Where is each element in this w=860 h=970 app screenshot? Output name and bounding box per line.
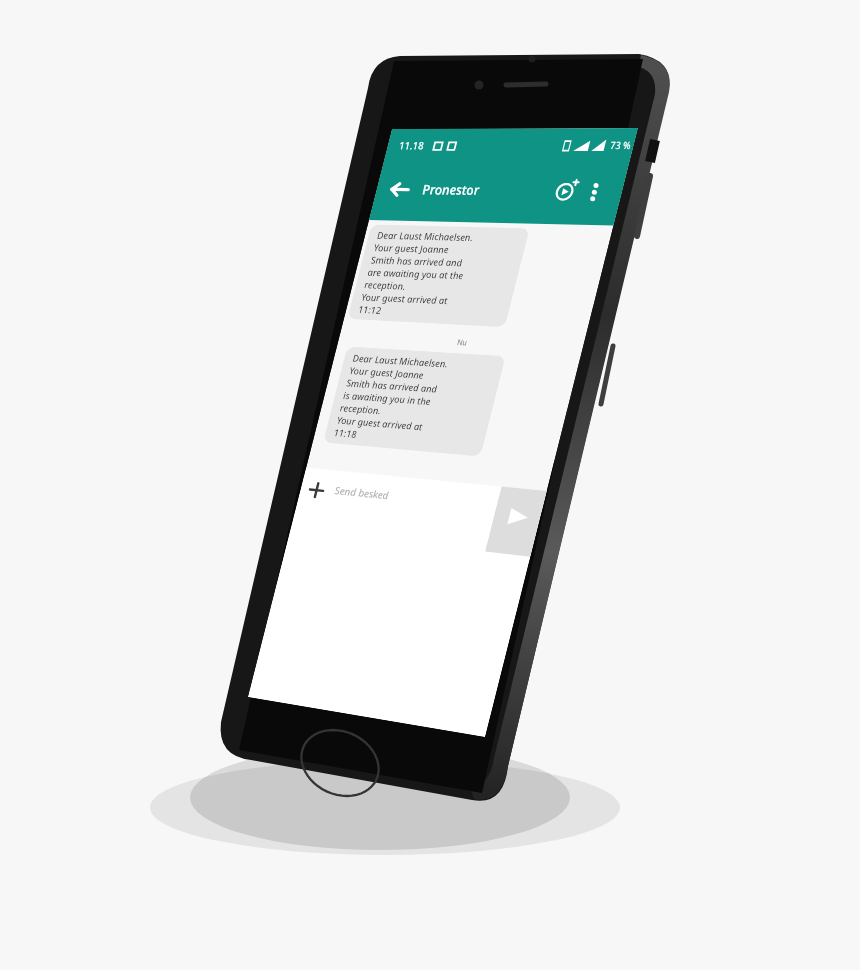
button[interactable]	[0, 0, 860, 970]
